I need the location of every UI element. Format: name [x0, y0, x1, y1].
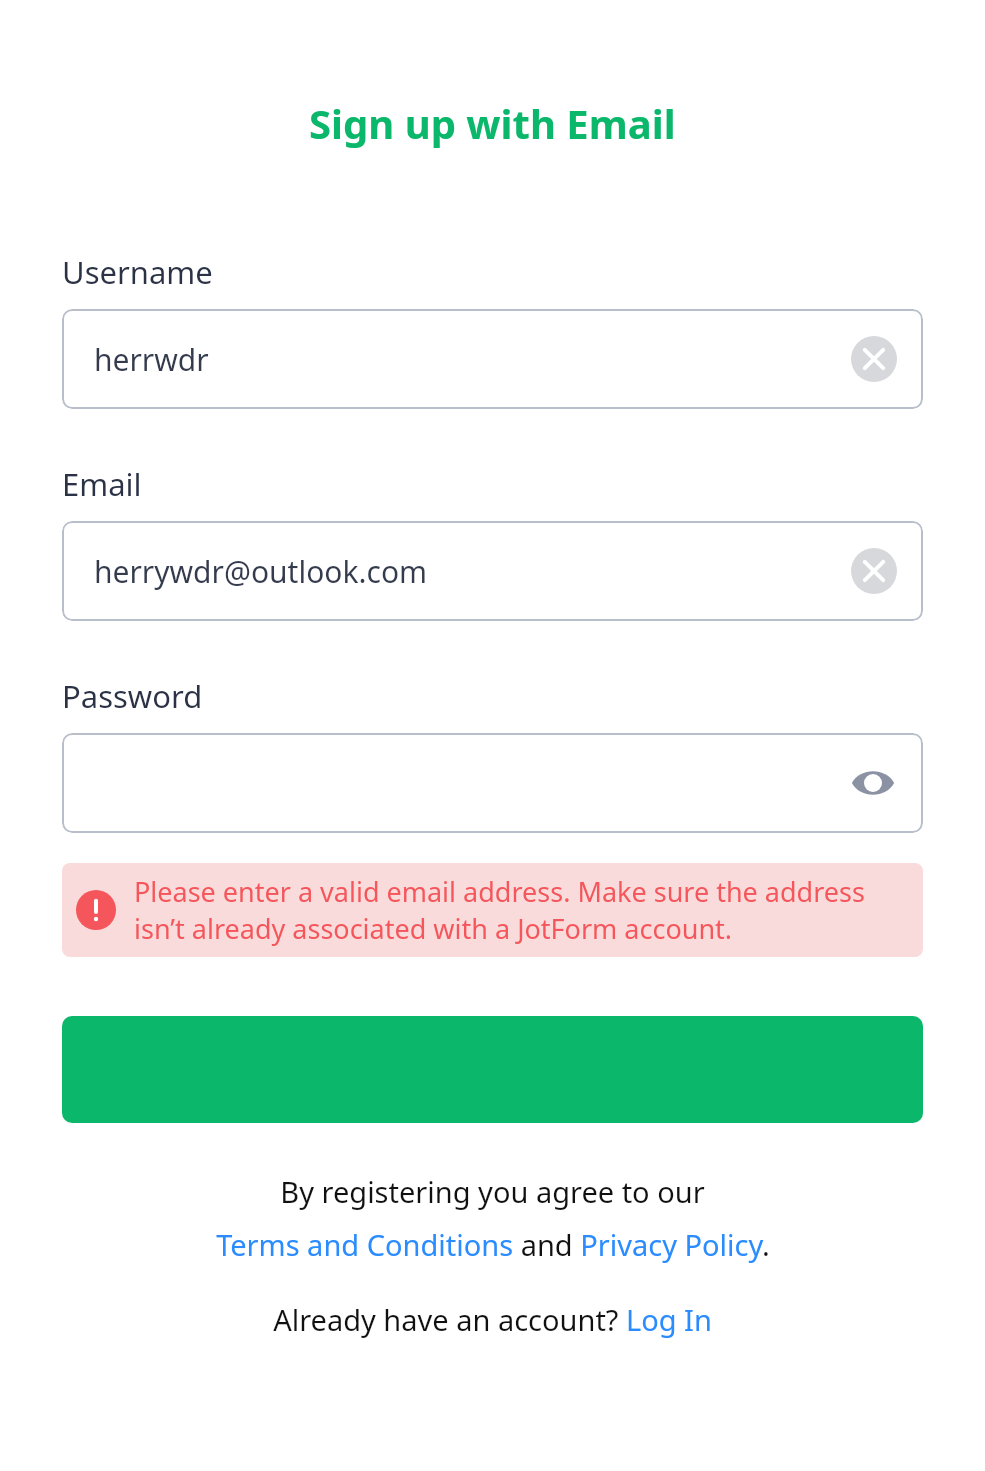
button[interactable]: herrywdr@outlook.com [62, 521, 923, 621]
staticText: By registering you agree to our [280, 1172, 705, 1211]
button[interactable]: Sign up [62, 1016, 923, 1123]
staticText: herrywdr@outlook.com [94, 551, 428, 592]
button[interactable]: Show password [847, 757, 899, 809]
staticText: Email [62, 463, 142, 505]
staticText: Password [62, 675, 203, 717]
button[interactable]: herrwdr [62, 309, 923, 409]
staticText: Terms and Conditions and Privacy Policy. [216, 1225, 770, 1264]
staticText: Sign up with Email [309, 96, 676, 150]
button[interactable]: Clear text [851, 336, 897, 382]
button[interactable]: Clear text [851, 548, 897, 594]
button[interactable]: Terms and Conditions and Privacy Policy. [62, 1225, 923, 1264]
button[interactable]: Already have an account? Log In [62, 1300, 923, 1339]
button[interactable]: Show password [62, 733, 923, 833]
staticText: Username [62, 251, 213, 293]
staticText: Already have an account? Log In [273, 1300, 712, 1339]
staticText: herrwdr [94, 339, 209, 380]
staticText: Please enter a valid email address. Make… [134, 873, 911, 947]
